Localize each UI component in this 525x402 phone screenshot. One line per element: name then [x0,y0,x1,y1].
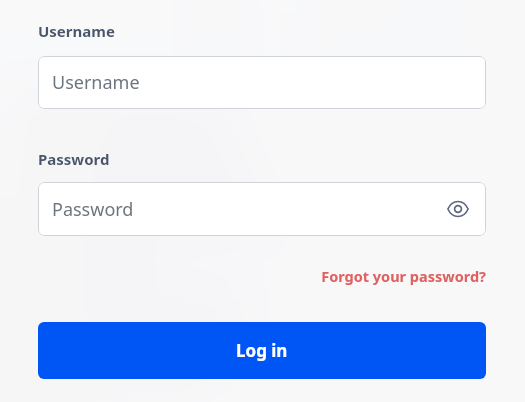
button[interactable]: Forgot your password? [321,266,486,286]
staticText: Forgot your password? [321,266,486,286]
staticText: Password [52,197,134,222]
button[interactable]: Password [38,182,486,236]
button[interactable]: Show password [442,193,474,225]
staticText: Username [38,21,115,41]
button[interactable]: Log in [38,322,486,379]
staticText: Log in [236,339,288,362]
staticText: Password [38,149,110,169]
staticText: Username [52,70,140,95]
button[interactable]: Username [38,56,486,109]
